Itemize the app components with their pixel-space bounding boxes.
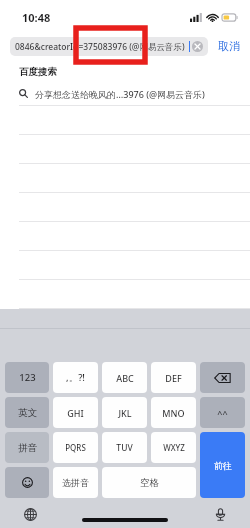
button[interactable]: Shift	[200, 397, 245, 428]
button[interactable]: Clear text	[192, 41, 203, 52]
button[interactable]: WXYZ	[151, 432, 196, 463]
staticText: 0846&creatorId=375083976 (@网易云音乐)	[15, 41, 189, 53]
button[interactable]: 123	[5, 362, 49, 393]
staticText: MNO	[162, 407, 185, 419]
button[interactable]: 分享想念送给晚风的…3976 (@网易云音乐)	[0, 82, 250, 105]
staticText: 分享想念送给晚风的…3976 (@网易云音乐)	[35, 88, 205, 100]
staticText: 前往	[214, 460, 232, 471]
button[interactable]: PQRS	[53, 432, 98, 463]
staticText: WXYZ	[163, 442, 185, 453]
staticText: 拼音	[18, 442, 37, 454]
staticText: JKL	[118, 407, 132, 419]
staticText: TUV	[116, 442, 133, 454]
button[interactable]: 空格	[102, 467, 196, 498]
staticText: 空格	[140, 477, 159, 489]
button[interactable]: 前往	[200, 432, 245, 498]
button[interactable]: GHI	[53, 397, 98, 428]
button[interactable]: MNO	[151, 397, 196, 428]
button[interactable]: TUV	[102, 432, 147, 463]
button[interactable]: Voice input	[210, 504, 230, 524]
staticText: 123	[19, 371, 36, 384]
staticText: GHI	[67, 407, 84, 419]
button[interactable]: 拼音	[5, 432, 49, 463]
staticText: ^^	[217, 407, 228, 419]
button[interactable]: ABC	[102, 362, 147, 393]
staticText: 选拼音	[62, 477, 89, 488]
staticText: PQRS	[65, 442, 86, 453]
button[interactable]: Emoji	[5, 467, 49, 498]
staticText: DEF	[165, 372, 182, 384]
button[interactable]: JKL	[102, 397, 147, 428]
button[interactable]: DEF	[151, 362, 196, 393]
button[interactable]: 选拼音	[53, 467, 98, 498]
staticText: 英文	[18, 407, 37, 419]
button[interactable]: ,。?!	[53, 362, 98, 393]
button[interactable]: Delete	[200, 362, 245, 393]
staticText: ,。?!	[66, 371, 85, 384]
button[interactable]: Switch keyboard	[20, 504, 40, 524]
button[interactable]: 取消	[214, 35, 244, 57]
button[interactable]: 英文	[5, 397, 49, 428]
staticText: ABC	[116, 372, 134, 384]
staticText: 10:48	[22, 10, 51, 25]
staticText: 百度搜索	[19, 66, 57, 78]
staticText: 取消	[218, 39, 240, 53]
button[interactable]: 0846&creatorId=375083976 (@网易云音乐)	[10, 37, 208, 56]
